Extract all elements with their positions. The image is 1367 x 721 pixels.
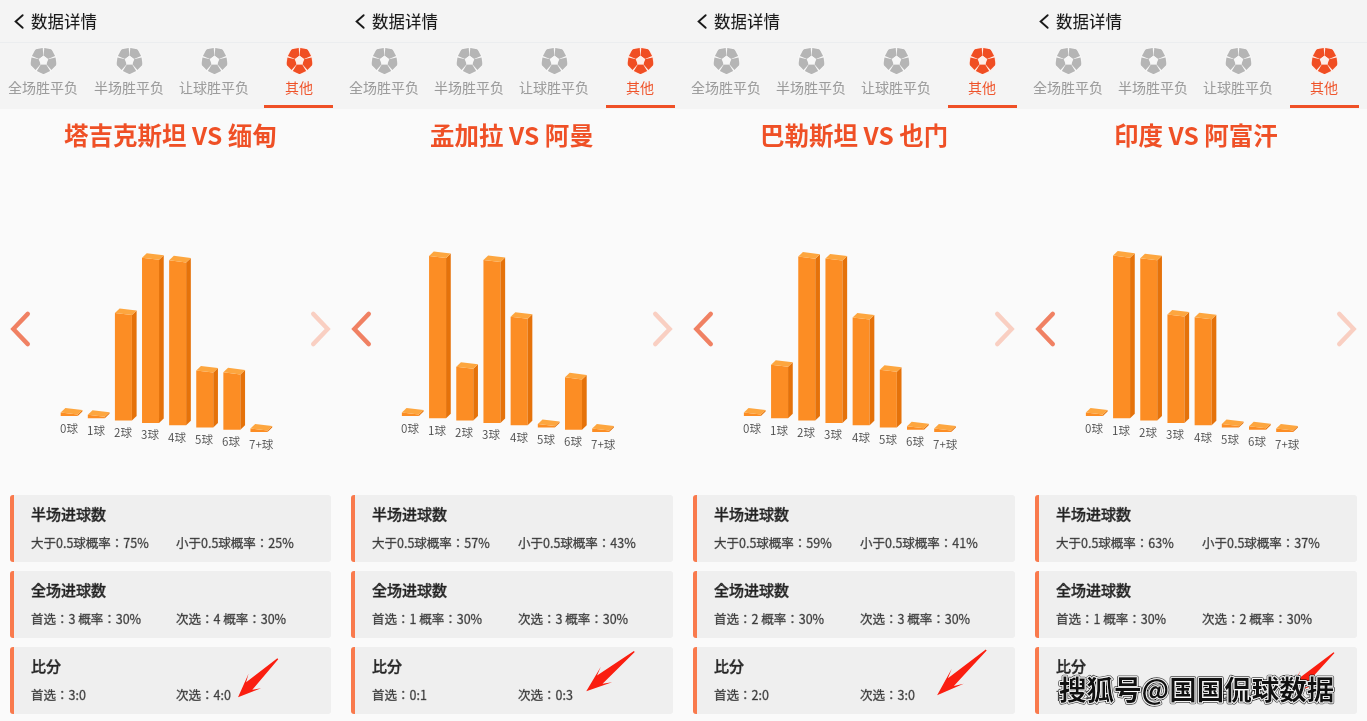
button[interactable]: 半场进球数 [1035, 495, 1357, 562]
button[interactable]: Previous [346, 312, 380, 346]
staticText: 半场胜平负 [434, 77, 504, 97]
button[interactable]: Previous [5, 312, 39, 346]
button[interactable]: 让球胜平负 [171, 43, 256, 109]
staticText: 数据详情 [372, 9, 438, 33]
staticText: 1球 [428, 422, 446, 439]
button[interactable]: 半场进球数 [351, 495, 673, 562]
button[interactable]: 全场进球数 [10, 571, 331, 638]
button[interactable]: Next [302, 312, 336, 346]
button[interactable]: 比分 [1035, 647, 1357, 714]
button[interactable]: 其他 [256, 43, 341, 109]
staticText: 首选：2:0 [714, 685, 769, 703]
button[interactable]: 全场进球数 [1035, 571, 1357, 638]
staticText: 0球 [1085, 420, 1103, 437]
button[interactable]: 全场胜平负 [341, 43, 426, 109]
staticText: 小于0.5球概率：43% [518, 533, 636, 551]
staticText: 次选：3 概率：30% [860, 609, 971, 627]
button[interactable]: 全场胜平负 [683, 43, 768, 109]
staticText: 大于0.5球概率：59% [714, 533, 832, 551]
button[interactable]: 半场胜平负 [768, 43, 853, 109]
staticText: 全场进球数 [31, 579, 107, 601]
staticText: 全场胜平负 [349, 77, 419, 97]
button[interactable]: Next [986, 312, 1020, 346]
button[interactable]: 全场进球数 [693, 571, 1015, 638]
staticText: 4球 [852, 429, 870, 446]
staticText: 次选：3 概率：30% [518, 609, 629, 627]
button[interactable]: 半场胜平负 [1110, 43, 1195, 109]
button[interactable]: 让球胜平负 [1195, 43, 1281, 109]
button[interactable]: 其他 [597, 43, 683, 109]
staticText: 6球 [906, 433, 924, 450]
button[interactable]: 让球胜平负 [511, 43, 597, 109]
staticText: 首选：1:0 [1056, 685, 1111, 703]
staticText: 首选：0:1 [372, 685, 427, 703]
staticText: 全场胜平负 [1033, 77, 1103, 97]
staticText: 小于0.5球概率：41% [860, 533, 978, 551]
staticText: 大于0.5球概率：57% [372, 533, 490, 551]
staticText: 让球胜平负 [179, 77, 249, 97]
button[interactable]: 让球胜平负 [853, 43, 939, 109]
staticText: 其他 [1310, 77, 1338, 97]
staticText: 大于0.5球概率：63% [1056, 533, 1174, 551]
button[interactable]: 半场进球数 [693, 495, 1015, 562]
staticText: 其他 [968, 77, 996, 97]
staticText: 首选：3:0 [31, 685, 86, 703]
staticText: 小于0.5球概率：37% [1202, 533, 1320, 551]
button[interactable]: 半场胜平负 [86, 43, 171, 109]
button[interactable]: 全场胜平负 [1025, 43, 1110, 109]
staticText: 全场进球数 [372, 579, 448, 601]
staticText: 1球 [770, 422, 788, 439]
staticText: 搜狐号@国国侃球数据 [1059, 668, 1335, 708]
staticText: 全场进球数 [31, 579, 107, 601]
staticText: 全场胜平负 [691, 77, 761, 97]
button[interactable]: 其他 [1281, 43, 1367, 109]
staticText: 首选：1 概率：30% [372, 609, 483, 627]
staticText: 1球 [87, 422, 105, 439]
staticText: 搜狐号@国国侃球数据 [1059, 668, 1335, 708]
staticText: 3球 [1166, 426, 1184, 443]
button[interactable]: Back [692, 11, 713, 32]
button[interactable]: 半场进球数 [10, 495, 331, 562]
staticText: 小于0.5球概率：43% [518, 533, 636, 551]
staticText: 小于0.5球概率：25% [176, 533, 294, 551]
staticText: 6球 [564, 433, 582, 450]
button[interactable]: Next [644, 312, 678, 346]
staticText: 5球 [537, 431, 555, 448]
button[interactable]: 半场胜平负 [426, 43, 511, 109]
staticText: 次选：2:0 [1202, 685, 1257, 703]
staticText: 首选：3:0 [31, 685, 86, 703]
staticText: 首选：1 概率：30% [1056, 609, 1167, 627]
staticText: 首选：1:0 [1056, 685, 1111, 703]
staticText: 小于0.5球概率：37% [1202, 533, 1320, 551]
button[interactable]: Back [9, 11, 30, 32]
staticText: 2球 [1139, 424, 1157, 441]
staticText: 次选：4:0 [176, 685, 231, 703]
button[interactable]: 全场进球数 [351, 571, 673, 638]
button[interactable]: 全场胜平负 [0, 43, 86, 109]
staticText: 3球 [141, 426, 159, 443]
staticText: 半场进球数 [372, 503, 448, 525]
button[interactable]: Back [1034, 11, 1055, 32]
staticText: 2球 [797, 424, 815, 441]
button[interactable]: 比分 [693, 647, 1015, 714]
button[interactable]: 其他 [939, 43, 1025, 109]
button[interactable]: Previous [688, 312, 722, 346]
staticText: 全场胜平负 [8, 77, 78, 97]
staticText: 数据详情 [31, 9, 97, 33]
staticText: 7+球 [591, 436, 616, 453]
staticText: 首选：1 概率：30% [1056, 609, 1167, 627]
button[interactable]: Previous [1030, 312, 1064, 346]
staticText: 5球 [1221, 431, 1239, 448]
staticText: 次选：4 概率：30% [176, 609, 287, 627]
staticText: 数据详情 [1056, 9, 1122, 33]
staticText: 比分 [31, 655, 62, 677]
button[interactable]: 比分 [10, 647, 331, 714]
staticText: 5球 [879, 431, 897, 448]
button[interactable]: Next [1328, 312, 1362, 346]
staticText: 6球 [222, 433, 240, 450]
button[interactable]: Back [350, 11, 371, 32]
staticText: 搜狐号@国国侃球数据 [1059, 668, 1335, 708]
button[interactable]: 比分 [351, 647, 673, 714]
staticText: 比分 [31, 655, 62, 677]
staticText: 4球 [1194, 429, 1212, 446]
